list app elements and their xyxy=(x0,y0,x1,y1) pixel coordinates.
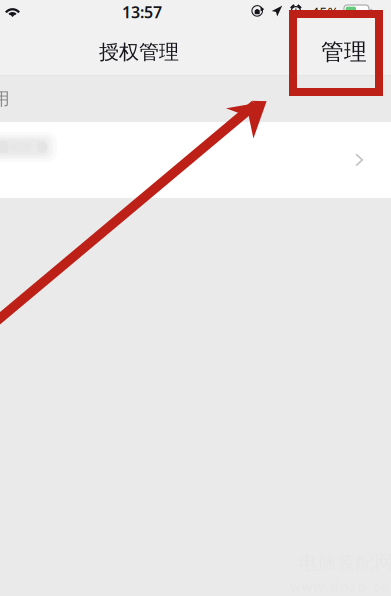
staticText: 授权管理 xyxy=(99,40,179,64)
staticText: 13:57 xyxy=(122,1,162,23)
staticText: 管理 xyxy=(321,38,367,66)
button[interactable] xyxy=(0,122,391,198)
staticText: 45% xyxy=(311,3,338,20)
staticText: 用 xyxy=(0,88,9,110)
button[interactable]: 管理 xyxy=(312,30,376,74)
